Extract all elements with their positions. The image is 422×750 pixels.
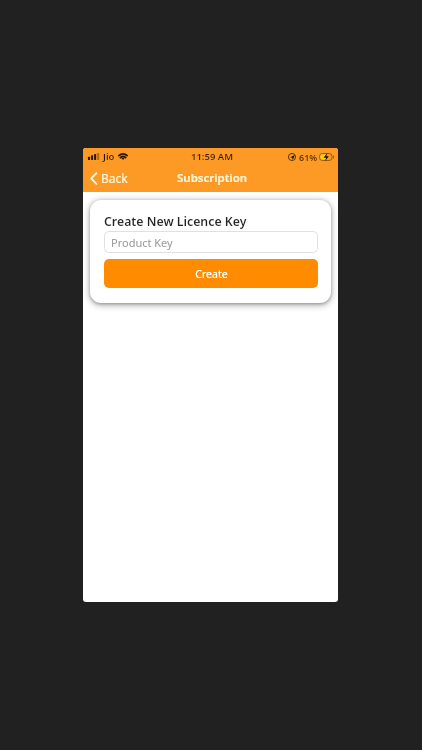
staticText: Jio xyxy=(103,150,115,163)
button[interactable]: Create xyxy=(104,259,318,288)
staticText: Subscription xyxy=(177,170,248,186)
staticText: Product Key xyxy=(111,235,173,250)
staticText: Create New Licence Key xyxy=(104,213,247,230)
button[interactable]: Product Key xyxy=(104,231,318,253)
staticText: 11:59 AM xyxy=(191,150,234,163)
staticText: 61% xyxy=(299,151,318,163)
staticText: Back xyxy=(101,170,128,186)
button[interactable]: Back xyxy=(83,168,136,188)
staticText: Create xyxy=(195,267,228,281)
